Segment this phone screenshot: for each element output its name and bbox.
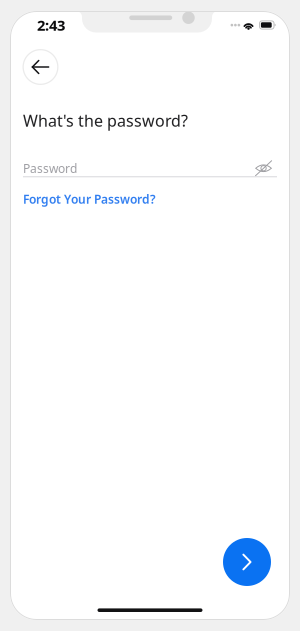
staticText: What's the password? [23,110,188,131]
staticText: 2:43 [37,15,65,35]
button[interactable]: Back [22,49,58,85]
button[interactable]: Continue [223,538,271,586]
staticText: Forgot Your Password? [23,191,156,207]
button[interactable]: Forgot Your Password? [23,191,156,207]
button[interactable]: Show password [255,160,277,176]
staticText: Password [23,160,77,176]
